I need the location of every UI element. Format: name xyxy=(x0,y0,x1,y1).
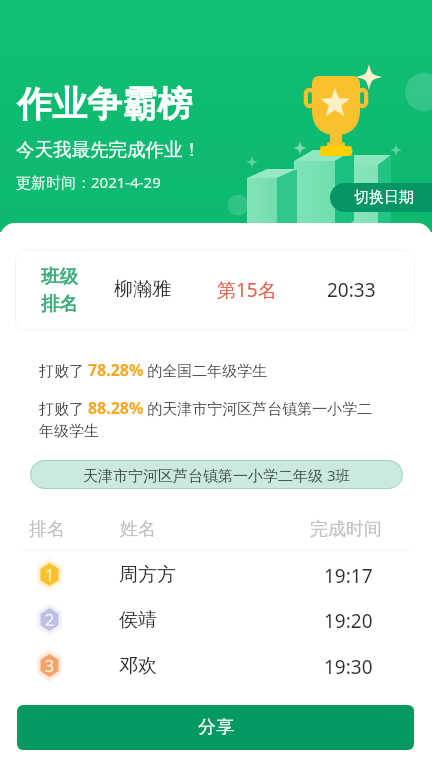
staticText: 打败了 88.28% 的天津市宁河区芦台镇第一小学二年级学生 xyxy=(39,397,383,441)
staticText: 切换日期 xyxy=(354,188,414,207)
staticText: 分享 xyxy=(198,716,234,739)
staticText: 邓欢 xyxy=(119,654,157,678)
staticText: 1 xyxy=(45,564,55,586)
staticText: 第15名 xyxy=(217,277,277,303)
button[interactable]: 3 xyxy=(0,643,432,688)
staticText: 今天我最先完成作业！ xyxy=(16,138,201,161)
staticText: 侯靖 xyxy=(119,608,157,632)
button[interactable]: 切换日期 xyxy=(330,183,432,212)
staticText: 班级 排名 xyxy=(41,265,78,315)
staticText: 20:33 xyxy=(327,277,376,303)
staticText: 完成时间 xyxy=(310,518,382,541)
staticText: 更新时间：2021-4-29 xyxy=(16,172,161,192)
staticText: 19:17 xyxy=(324,563,373,589)
staticText: 周方方 xyxy=(119,563,176,587)
staticText: 19:30 xyxy=(324,654,373,680)
staticText: 3 xyxy=(45,655,55,677)
staticText: 19:20 xyxy=(324,608,373,634)
staticText: 打败了 78.28% 的全国二年级学生 xyxy=(39,359,268,381)
staticText: 2 xyxy=(45,609,55,631)
button[interactable]: 2 xyxy=(0,597,432,642)
button[interactable]: 分享 xyxy=(17,705,414,750)
staticText: 排名 xyxy=(29,518,65,541)
staticText: 作业争霸榜 xyxy=(17,82,192,126)
button[interactable]: 1 xyxy=(0,552,432,597)
button[interactable]: 班级 排名 xyxy=(15,250,415,331)
staticText: 姓名 xyxy=(120,518,156,541)
button[interactable]: 天津市宁河区芦台镇第一小学二年级 3班 xyxy=(30,460,403,489)
staticText: 柳瀚雅 xyxy=(114,277,171,301)
staticText: 天津市宁河区芦台镇第一小学二年级 3班 xyxy=(83,465,351,485)
